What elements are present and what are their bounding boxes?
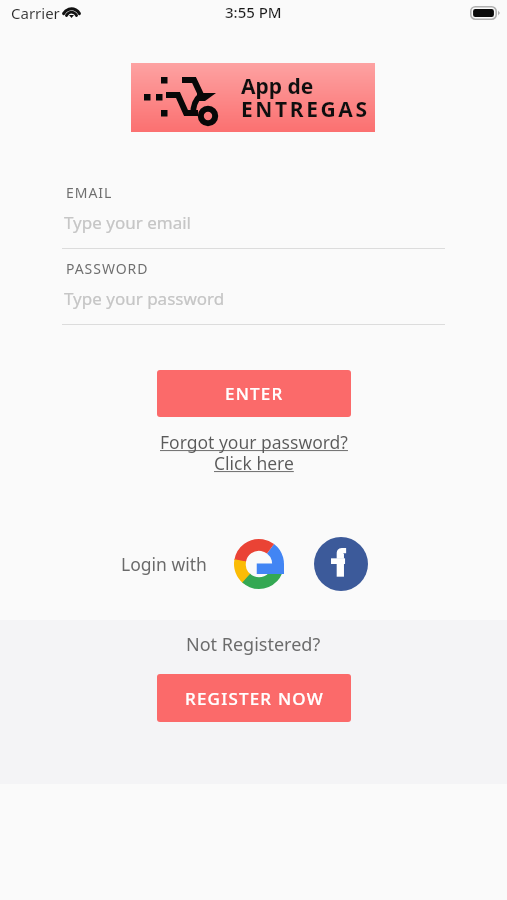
button[interactable]: Login with Facebook [314,537,368,591]
staticText: 3:55 PM [225,2,282,22]
staticText: Carrier [11,3,60,23]
button[interactable]: EMAIL [62,180,445,249]
staticText: Type your email [64,211,191,234]
staticText: ENTER [225,382,284,405]
staticText: EMAIL [66,183,113,202]
staticText: App de [241,72,314,101]
staticText: Click here [214,451,294,475]
staticText: Type your password [64,287,225,310]
staticText: Not Registered? [186,632,321,657]
staticText: Forgot your password? [160,430,348,454]
staticText: REGISTER NOW [185,687,324,710]
staticText: PASSWORD [66,259,149,278]
staticText: ENTREGAS [241,95,370,124]
button[interactable]: PASSWORD [62,256,445,325]
button[interactable]: Forgot your password? [150,430,357,478]
button[interactable]: Login with Google [234,539,284,589]
staticText: Login with [121,552,207,576]
button[interactable]: REGISTER NOW [157,674,351,722]
button[interactable]: ENTER [157,370,351,417]
